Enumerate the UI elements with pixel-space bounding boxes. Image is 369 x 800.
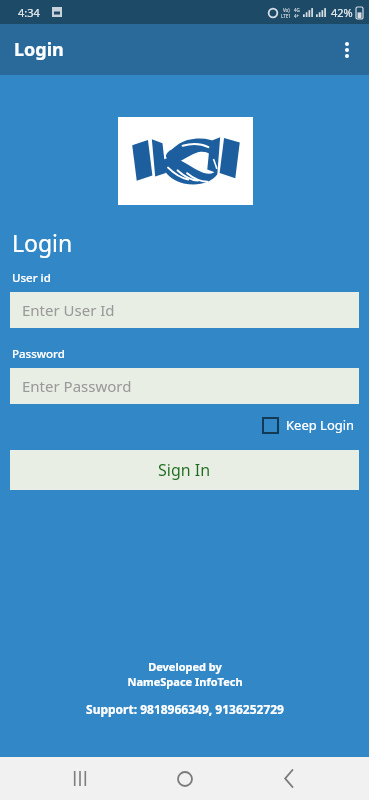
- staticText: Support: 9818966349, 9136252729: [86, 701, 284, 717]
- other: Handshake logo: [130, 128, 242, 194]
- button[interactable]: Sign In: [10, 450, 359, 490]
- button[interactable]: Home: [161, 757, 209, 800]
- staticText: Login: [14, 37, 64, 62]
- staticText: 4G: [294, 7, 300, 13]
- staticText: Keep Login: [286, 416, 355, 434]
- staticText: LTE1: [281, 13, 291, 19]
- staticText: Enter Password: [22, 376, 132, 396]
- staticText: 4:34: [18, 5, 40, 20]
- staticText: 42%: [331, 5, 353, 20]
- staticText: Enter User Id: [22, 300, 115, 320]
- button[interactable]: Keep Login: [258, 412, 359, 438]
- staticText: Sign In: [158, 459, 211, 481]
- button[interactable]: More options: [325, 28, 369, 72]
- staticText: Developed by: [148, 659, 222, 674]
- button[interactable]: Back: [265, 757, 313, 800]
- button[interactable]: Recent apps: [56, 757, 104, 800]
- staticText: NameSpace InfoTech: [127, 674, 243, 689]
- staticText: Password: [12, 346, 65, 362]
- staticText: Login: [12, 227, 73, 258]
- button[interactable]: Enter Password: [10, 368, 359, 404]
- staticText: 4+: [294, 13, 300, 19]
- button[interactable]: Enter User Id: [10, 292, 359, 328]
- staticText: User id: [12, 270, 51, 286]
- staticText: Vo): [283, 7, 290, 13]
